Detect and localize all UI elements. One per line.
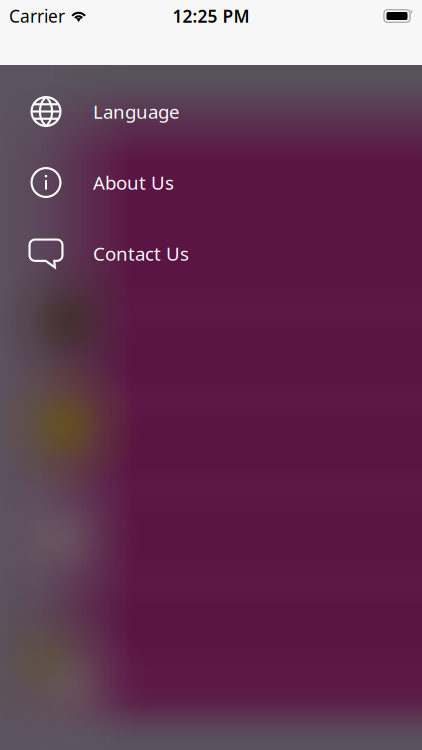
button[interactable]: Language [0,76,422,147]
button[interactable]: About Us [0,147,422,218]
staticText: 12:25 PM [172,4,249,27]
staticText: Carrier [9,4,65,27]
button[interactable]: Contact Us [0,218,422,289]
staticText: Contact Us [93,241,189,266]
staticText: Language [93,99,180,124]
staticText: About Us [93,170,174,195]
